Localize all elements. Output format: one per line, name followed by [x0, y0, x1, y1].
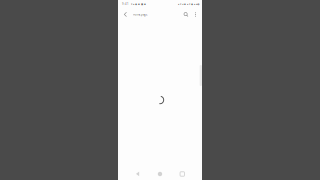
button[interactable]: Back: [129, 168, 146, 179]
staticText: Homepage: [133, 13, 148, 16]
button[interactable]: Recent apps: [174, 168, 191, 179]
button[interactable]: Home: [151, 168, 168, 179]
staticText: ▴ ▾ ◂ ▪ ▴ ▾ ◆ ▴ ▰◗: [178, 2, 199, 5]
button[interactable]: More options: [191, 8, 200, 20]
button[interactable]: Homepage: [131, 8, 150, 20]
button[interactable]: Search: [181, 8, 191, 20]
staticText: 9:41 ▾ ▴ ◆ ▪ ◼ ▪: [122, 2, 146, 6]
button[interactable]: Back: [120, 8, 131, 20]
